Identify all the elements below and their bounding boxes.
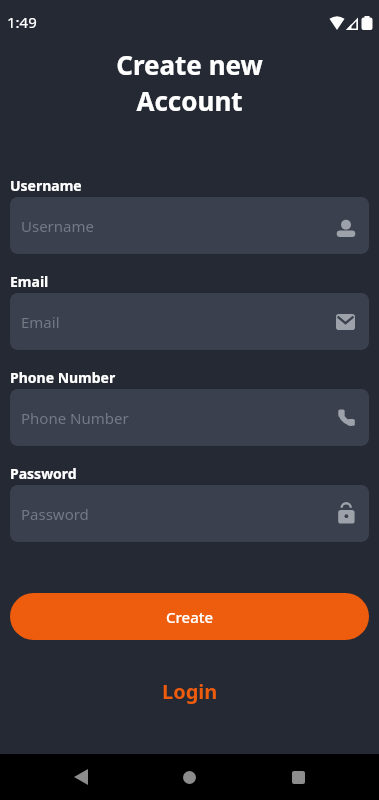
button[interactable]: [26, 754, 135, 800]
staticText: Phone Number: [10, 368, 116, 387]
button[interactable]: Email: [10, 293, 369, 350]
staticText: Email: [10, 272, 49, 291]
button[interactable]: Login: [150, 676, 230, 707]
staticText: Create new: [0, 47, 379, 82]
staticText: Username: [10, 176, 82, 195]
staticText: Account: [0, 83, 379, 118]
staticText: Password: [10, 464, 77, 483]
staticText: Username: [21, 216, 94, 236]
button[interactable]: [135, 754, 244, 800]
staticText: Login: [162, 678, 218, 705]
staticText: Create: [166, 607, 214, 627]
button[interactable]: Phone Number: [10, 389, 369, 446]
staticText: Phone Number: [21, 408, 129, 428]
button[interactable]: Create: [10, 593, 369, 640]
staticText: 1:49: [7, 12, 37, 32]
staticText: Password: [21, 504, 89, 524]
button[interactable]: [244, 754, 353, 800]
button[interactable]: Username: [10, 197, 369, 254]
button[interactable]: Password: [10, 485, 369, 542]
staticText: Email: [21, 312, 60, 332]
